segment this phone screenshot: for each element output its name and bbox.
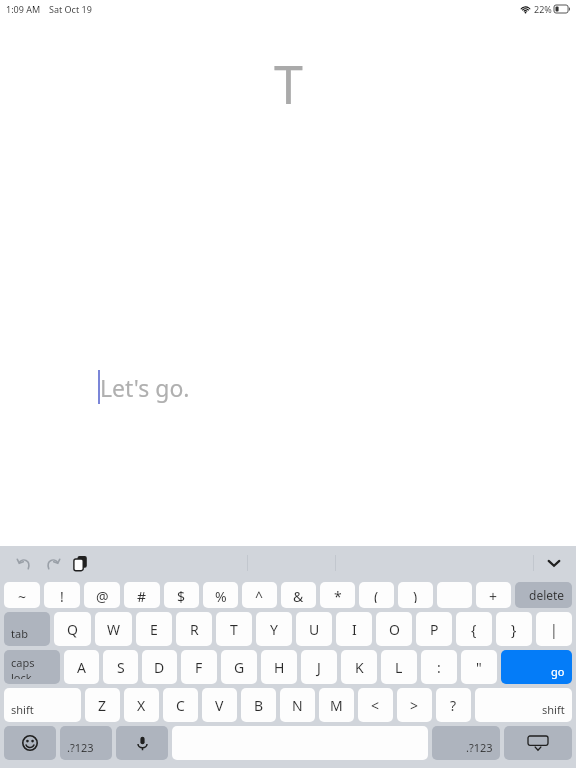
button[interactable]: Undo [10, 549, 38, 577]
staticText: caps lock [11, 655, 53, 679]
button[interactable] [504, 726, 572, 760]
button[interactable] [116, 726, 168, 760]
staticText: # [137, 587, 147, 603]
staticText: S [117, 658, 125, 677]
button[interactable]: I [336, 612, 372, 646]
button[interactable]: Hide keyboard [540, 549, 568, 577]
button[interactable]: Paste [66, 549, 94, 577]
button[interactable]: D [142, 650, 177, 684]
button[interactable]: + [476, 582, 511, 608]
button[interactable]: Y [256, 612, 292, 646]
button[interactable]: tab [4, 612, 50, 646]
staticText: H [274, 658, 285, 677]
button[interactable]: > [397, 688, 432, 722]
button[interactable]: B [241, 688, 276, 722]
button[interactable]: delete [515, 582, 572, 608]
staticText: Let's go. [100, 372, 190, 403]
button[interactable]: < [358, 688, 393, 722]
button[interactable]: } [496, 612, 532, 646]
button[interactable]: M [319, 688, 354, 722]
staticText: P [430, 620, 439, 639]
button[interactable]: " [461, 650, 497, 684]
staticText: I [352, 620, 357, 639]
staticText: .?123 [67, 740, 94, 755]
button[interactable]: C [163, 688, 198, 722]
button[interactable]: S [103, 650, 138, 684]
button[interactable]: R [176, 612, 212, 646]
button[interactable]: % [203, 582, 238, 608]
button[interactable]: L [381, 650, 417, 684]
button[interactable]: V [202, 688, 237, 722]
button[interactable]: N [280, 688, 315, 722]
staticText: U [309, 620, 320, 639]
button[interactable]: shift [4, 688, 81, 722]
button[interactable]: Q [54, 612, 91, 646]
staticText: .?123 [466, 740, 493, 755]
staticText: < [371, 696, 380, 715]
staticText: " [476, 658, 482, 677]
staticText: : [437, 658, 441, 677]
staticText: > [410, 696, 419, 715]
button[interactable]: ? [436, 688, 471, 722]
button[interactable]: ( [359, 582, 394, 608]
staticText: A [77, 658, 86, 677]
button[interactable]: ~ [4, 582, 40, 608]
button[interactable]: Redo [38, 549, 66, 577]
button[interactable]: U [296, 612, 332, 646]
button[interactable]: & [281, 582, 316, 608]
staticText: X [137, 696, 146, 715]
button[interactable]: P [416, 612, 452, 646]
button[interactable]: ) [398, 582, 433, 608]
button[interactable]: ! [44, 582, 80, 608]
button[interactable]: { [456, 612, 492, 646]
staticText: $ [177, 587, 186, 603]
staticText: go [551, 664, 565, 679]
button[interactable]: X [124, 688, 159, 722]
staticText: tab [11, 626, 28, 641]
button[interactable]: caps lock [4, 650, 60, 684]
staticText: ~ [18, 587, 27, 603]
button[interactable]: T [216, 612, 252, 646]
staticText: + [489, 587, 498, 603]
button[interactable]: O [376, 612, 412, 646]
button[interactable]: W [95, 612, 132, 646]
button[interactable]: # [124, 582, 160, 608]
button[interactable]: G [221, 650, 257, 684]
button[interactable]: $ [164, 582, 199, 608]
button[interactable]: @ [84, 582, 120, 608]
button[interactable]: .?123 [432, 726, 500, 760]
button[interactable]: _ [437, 582, 472, 608]
button[interactable]: F [181, 650, 217, 684]
button[interactable]: J [301, 650, 337, 684]
staticText: T [230, 620, 238, 639]
staticText: M [330, 696, 343, 715]
button[interactable]: : [421, 650, 457, 684]
staticText: } [511, 620, 517, 639]
staticText: % [215, 587, 227, 603]
button[interactable]: * [320, 582, 355, 608]
button[interactable]: Z [85, 688, 120, 722]
staticText: @ [96, 587, 109, 603]
staticText: shift [542, 702, 565, 717]
button[interactable]: | [536, 612, 572, 646]
button[interactable] [4, 726, 56, 760]
button[interactable]: K [341, 650, 377, 684]
staticText: F [195, 658, 203, 677]
button[interactable]: ^ [242, 582, 277, 608]
button[interactable]: go [501, 650, 572, 684]
staticText: ) [413, 587, 418, 603]
staticText: J [317, 658, 321, 677]
staticText: ? [450, 696, 457, 715]
staticText: Y [270, 620, 278, 639]
staticText: 22% [534, 3, 552, 15]
button[interactable]: A [64, 650, 99, 684]
button[interactable]: shift [475, 688, 572, 722]
staticText: K [355, 658, 364, 677]
staticText: 1:09 AM [6, 3, 41, 15]
button[interactable]: .?123 [60, 726, 112, 760]
button[interactable]: E [136, 612, 172, 646]
button[interactable]: H [261, 650, 297, 684]
staticText: ( [374, 587, 379, 603]
staticText: delete [529, 587, 565, 603]
